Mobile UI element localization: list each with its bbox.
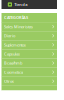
button[interactable]: Suplementos	[1, 40, 57, 49]
staticText: Diario	[4, 33, 15, 38]
button[interactable]: Sales Minoristas	[1, 22, 57, 31]
staticText: Sales Minoristas	[4, 24, 33, 29]
staticText: Cosmetica	[4, 69, 23, 75]
button[interactable]: Capsulas	[1, 49, 57, 58]
staticText: Tienda	[14, 2, 27, 7]
button[interactable]: Diario	[1, 31, 57, 40]
button[interactable]: Inicio	[8, 2, 12, 7]
button[interactable]: Cosmetica	[1, 68, 57, 77]
staticText: CATEGORÍAS	[4, 15, 28, 20]
staticText: Suplementos	[4, 42, 26, 47]
staticText: Capsulas	[4, 51, 20, 57]
button[interactable]: Otros	[1, 77, 57, 86]
staticText: Otros	[4, 79, 14, 84]
staticText: Bcaa/hmb	[4, 60, 22, 66]
button[interactable]: Bcaa/hmb	[1, 58, 57, 68]
